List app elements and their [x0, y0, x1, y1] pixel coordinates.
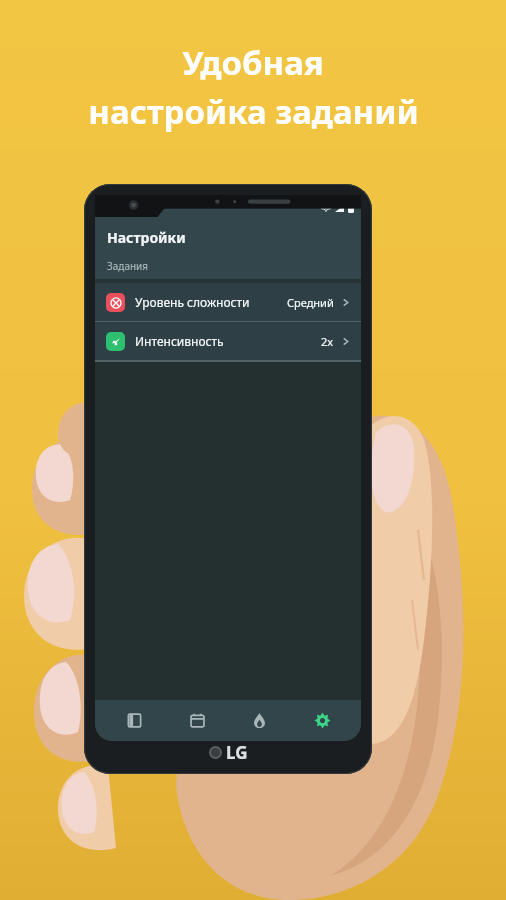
button[interactable]: Calendar — [174, 700, 220, 741]
staticText: Удобная — [182, 40, 324, 85]
button[interactable]: Activity — [236, 700, 282, 741]
staticText: Задания — [107, 259, 149, 273]
staticText: Средний — [287, 295, 334, 310]
button[interactable]: Library — [111, 700, 157, 741]
button[interactable]: Settings — [299, 700, 345, 741]
staticText: Интенсивность — [135, 333, 224, 349]
button[interactable]: Интенсивность — [95, 322, 361, 360]
staticText: Уровень сложности — [135, 294, 250, 310]
staticText: LG — [226, 741, 248, 764]
button[interactable]: Уровень сложности — [95, 283, 361, 321]
staticText: Настройки — [107, 228, 186, 247]
staticText: 2x — [321, 334, 334, 349]
staticText: настройка заданий — [88, 89, 419, 134]
